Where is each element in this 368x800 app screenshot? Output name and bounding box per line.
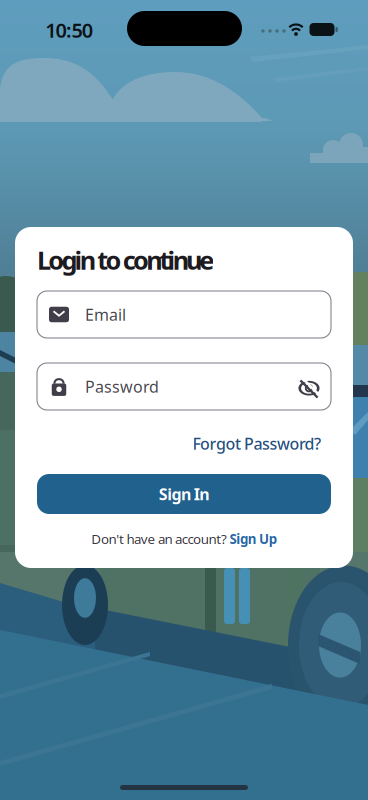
staticText: Forgot Password? [192,433,321,454]
button[interactable] [298,376,320,396]
staticText: Email [85,304,126,325]
staticText: Sign In [159,483,209,505]
button[interactable]: Password [37,363,331,410]
button[interactable]: Sign In [37,474,331,514]
staticText: Password [85,376,159,397]
button[interactable]: Sign Up [230,530,277,548]
staticText: 10:50 [45,17,93,43]
staticText: Sign Up [230,530,277,548]
button[interactable]: Email [37,291,331,338]
button[interactable]: Forgot Password? [192,433,321,454]
staticText: Don't have an account? [91,530,230,548]
staticText: Login to continue [37,243,214,277]
